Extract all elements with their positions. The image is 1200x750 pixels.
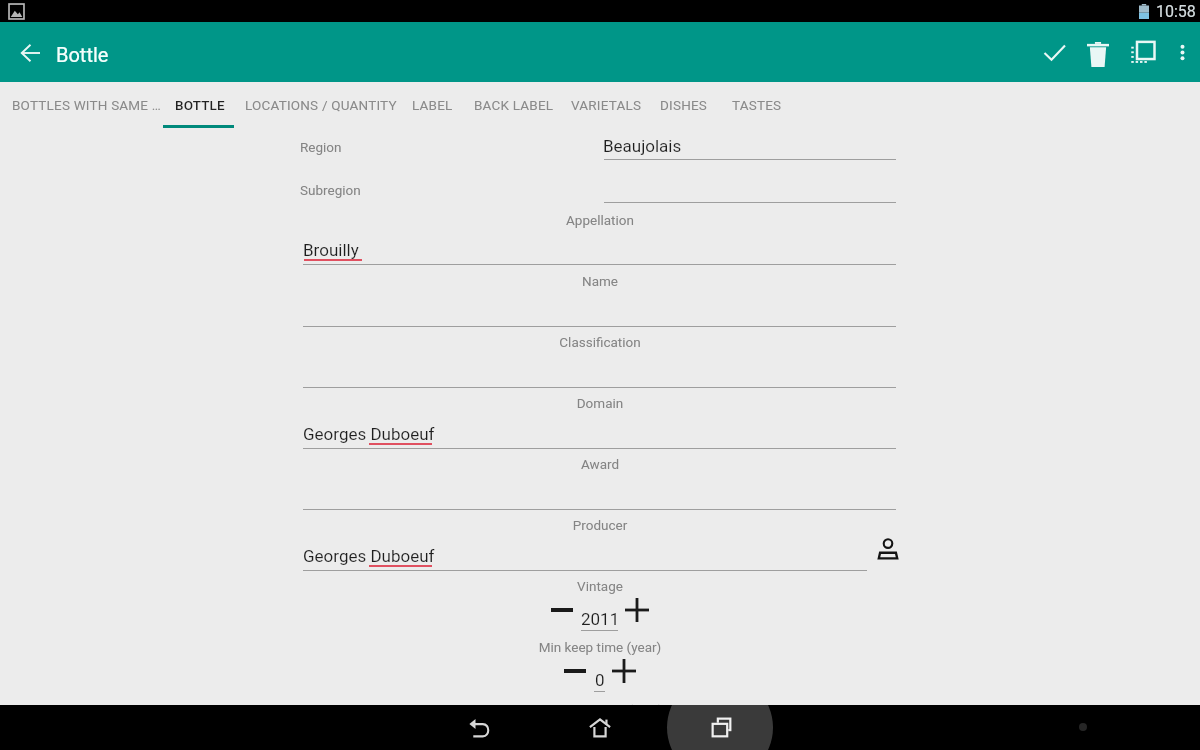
staticText: Beaujolais: [603, 136, 682, 156]
staticText: Producer: [0, 517, 1200, 533]
staticText: BACK LABEL: [474, 97, 554, 113]
button[interactable]: Delete: [1076, 22, 1120, 82]
staticText: VARIETALS: [571, 97, 642, 113]
staticText: Min keep time (year): [0, 639, 1200, 655]
staticText: 2011: [581, 609, 618, 629]
staticText: Name: [0, 273, 1200, 289]
button[interactable]: BOTTLE: [165, 82, 237, 129]
staticText: Region: [300, 139, 342, 155]
button[interactable]: Decrement: [557, 654, 593, 688]
staticText: Brouilly: [303, 240, 359, 260]
button[interactable]: Increment: [619, 593, 655, 627]
staticText: 0: [595, 670, 605, 690]
staticText: 10:58: [1156, 2, 1196, 21]
staticText: Max keep time (year): [0, 702, 1200, 718]
staticText: Classification: [0, 334, 1200, 350]
staticText: Georges Duboeuf: [303, 546, 435, 566]
staticText: Domain: [0, 395, 1200, 411]
button[interactable]: Recent apps: [660, 705, 780, 750]
button[interactable]: LABEL: [402, 82, 465, 129]
button[interactable]: Increment: [606, 654, 642, 688]
button[interactable]: BOTTLES WITH SAME …: [2, 82, 185, 129]
staticText: Bottle: [56, 43, 109, 66]
button[interactable]: Duplicate: [1120, 22, 1164, 82]
staticText: BOTTLES WITH SAME …: [12, 97, 161, 113]
button[interactable]: Pick producer: [873, 534, 903, 564]
staticText: Subregion: [300, 182, 361, 198]
button[interactable]: Navigate up: [6, 22, 54, 82]
button[interactable]: VARIETALS: [561, 82, 658, 129]
button[interactable]: BACK LABEL: [464, 82, 570, 129]
button[interactable]: DISHES: [650, 82, 722, 129]
staticText: Award: [0, 456, 1200, 472]
staticText: LABEL: [412, 97, 453, 113]
button[interactable]: LOCATIONS / QUANTITY: [235, 82, 427, 129]
button[interactable]: Back: [420, 705, 540, 750]
button[interactable]: Decrement: [544, 593, 580, 627]
button[interactable]: More options: [1164, 22, 1200, 82]
button[interactable]: TASTES: [722, 82, 794, 129]
staticText: Appellation: [0, 212, 1200, 228]
staticText: TASTES: [732, 97, 782, 113]
staticText: Vintage: [0, 578, 1200, 594]
staticText: Georges Duboeuf: [303, 424, 435, 444]
staticText: LOCATIONS / QUANTITY: [245, 97, 397, 113]
button[interactable]: Save: [1032, 22, 1076, 82]
staticText: DISHES: [660, 97, 708, 113]
staticText: BOTTLE: [175, 97, 225, 113]
button[interactable]: Home: [540, 705, 660, 750]
